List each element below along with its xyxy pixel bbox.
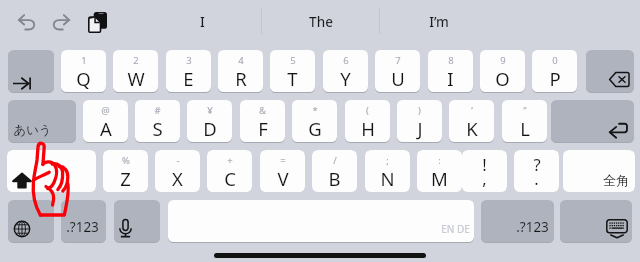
staticText: ; — [386, 154, 389, 167]
button[interactable]: - — [155, 150, 200, 192]
staticText: , — [482, 167, 487, 189]
staticText: I’m — [429, 13, 449, 31]
staticText: ( — [366, 104, 369, 117]
button[interactable]: % — [103, 150, 148, 192]
staticText: W — [127, 66, 145, 91]
button[interactable]: @ — [83, 100, 128, 142]
staticText: P — [549, 66, 561, 91]
button[interactable]: I’m — [379, 0, 498, 43]
button[interactable]: 2 — [113, 50, 158, 92]
button[interactable]: ! — [462, 150, 507, 192]
button[interactable]: Undo — [13, 8, 41, 36]
staticText: N — [380, 166, 395, 191]
staticText: - — [176, 154, 180, 167]
button[interactable]: 8 — [428, 50, 473, 92]
button[interactable]: あいう — [8, 100, 76, 142]
staticText: 8 — [448, 54, 454, 67]
staticText: ? — [533, 153, 541, 175]
button[interactable]: ’ — [449, 100, 494, 142]
staticText: U — [391, 66, 405, 91]
staticText: F — [258, 116, 268, 141]
button[interactable]: " — [502, 100, 547, 142]
button[interactable]: .?123 — [61, 200, 106, 242]
staticText: I — [200, 13, 205, 31]
button[interactable]: 1 — [61, 50, 106, 92]
staticText: / — [333, 154, 337, 167]
staticText: あいう — [13, 122, 52, 138]
staticText: S — [152, 116, 163, 141]
button[interactable]: Redo — [47, 8, 75, 36]
button[interactable]: * — [292, 100, 337, 142]
staticText: 5 — [290, 54, 296, 67]
button[interactable]: 全角 — [563, 150, 635, 192]
staticText: Z — [120, 166, 131, 191]
button[interactable]: # — [135, 100, 180, 142]
staticText: T — [287, 66, 298, 91]
staticText: X — [172, 166, 183, 191]
button[interactable]: Hide keyboard — [560, 200, 632, 242]
button[interactable]: = — [260, 150, 305, 192]
button[interactable]: ( — [345, 100, 390, 142]
staticText: J — [417, 116, 423, 141]
staticText: EN DE — [441, 222, 470, 236]
staticText: ’ — [471, 104, 473, 117]
staticText: V — [277, 166, 289, 191]
button[interactable]: Copy — [82, 7, 112, 37]
button[interactable]: 3 — [166, 50, 211, 92]
staticText: E — [183, 66, 194, 91]
staticText: ! — [482, 153, 487, 175]
other: Pointing hand annotation — [30, 140, 78, 224]
button[interactable]: & — [240, 100, 285, 142]
staticText: 3 — [186, 54, 192, 67]
button[interactable]: Voice input — [114, 200, 160, 242]
button[interactable]: EN DE — [168, 200, 474, 242]
button[interactable]: 9 — [480, 50, 525, 92]
button[interactable]: 6 — [323, 50, 368, 92]
staticText: 全角 — [603, 172, 629, 188]
staticText: 6 — [343, 54, 349, 67]
button[interactable]: Shift — [7, 150, 96, 192]
staticText: " — [523, 104, 527, 117]
button[interactable]: I — [143, 0, 261, 43]
staticText: C — [224, 166, 236, 191]
staticText: G — [308, 116, 322, 141]
button[interactable]: .?123 — [481, 200, 554, 242]
staticText: .?123 — [66, 218, 99, 236]
button[interactable]: ¥ — [187, 100, 232, 142]
button[interactable]: Backspace — [586, 50, 634, 92]
staticText: .?123 — [516, 218, 549, 236]
staticText: + — [227, 154, 233, 167]
staticText: 4 — [238, 54, 244, 67]
button[interactable]: : — [417, 150, 462, 192]
staticText: ¥ — [207, 104, 213, 117]
staticText: B — [328, 166, 341, 191]
staticText: H — [361, 116, 375, 141]
staticText: L — [520, 116, 530, 141]
staticText: K — [466, 116, 478, 141]
button[interactable]: ? — [514, 150, 559, 192]
button[interactable]: The — [261, 0, 380, 43]
button[interactable]: Return — [551, 100, 634, 142]
staticText: 9 — [500, 54, 506, 67]
button[interactable]: ) — [397, 100, 442, 142]
staticText: * — [312, 104, 318, 117]
button[interactable]: ; — [365, 150, 410, 192]
button[interactable]: 7 — [375, 50, 420, 92]
staticText: D — [203, 116, 217, 141]
staticText: : — [438, 154, 441, 167]
button[interactable]: + — [207, 150, 252, 192]
staticText: M — [431, 166, 448, 191]
button[interactable]: 0 — [532, 50, 577, 92]
button[interactable]: Change keyboard — [8, 200, 54, 242]
staticText: R — [235, 66, 247, 91]
staticText: # — [154, 104, 161, 117]
button[interactable]: / — [312, 150, 357, 192]
button[interactable]: 5 — [270, 50, 315, 92]
staticText: O — [495, 66, 510, 91]
button[interactable]: Tab — [8, 50, 54, 92]
staticText: 2 — [133, 54, 139, 67]
staticText: & — [259, 104, 266, 117]
button[interactable]: 4 — [218, 50, 263, 92]
staticText: @ — [101, 104, 110, 117]
staticText: = — [280, 154, 286, 167]
